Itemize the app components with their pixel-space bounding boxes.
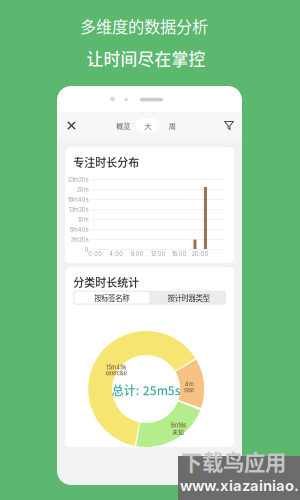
button[interactable]: 概览 <box>111 119 135 132</box>
staticText: 8:00 <box>131 251 144 257</box>
staticText: 5m16s <box>170 422 186 429</box>
staticText: 周 <box>169 120 176 131</box>
staticText: 12:00 <box>151 251 166 257</box>
staticText: 15m49s <box>106 364 126 371</box>
staticText: 3m20s <box>71 236 89 243</box>
staticText: www.xiazainiao.com <box>180 477 299 500</box>
staticText: 13m20s <box>69 206 89 213</box>
staticText: 4m <box>185 381 194 388</box>
staticText: 20:00 <box>192 251 209 257</box>
button[interactable]: 按计时器类型 <box>151 290 226 305</box>
staticText: 16m40s <box>68 196 89 203</box>
staticText: 6m40s <box>70 226 89 233</box>
staticText: 23m20s <box>68 176 89 183</box>
staticText: 下载鸟应用 <box>181 446 286 477</box>
staticText: 未知 <box>172 428 184 436</box>
staticText: 总计: 25m5s <box>112 381 181 399</box>
staticText: 0:00 <box>88 251 102 257</box>
button[interactable]: 按标签名称 <box>73 290 151 305</box>
button[interactable]: 天 <box>135 119 160 132</box>
staticText: 天 <box>144 120 151 131</box>
staticText: 16:00 <box>172 251 187 257</box>
staticText: 多维度的数据分析 <box>80 14 208 38</box>
staticText: 分类时长统计 <box>73 274 139 290</box>
staticText: 按计时器类型 <box>167 292 209 303</box>
staticText: rest <box>184 387 194 394</box>
button[interactable]: Filter <box>57 112 75 138</box>
staticText: 10m <box>78 216 89 223</box>
button[interactable]: 周 <box>160 119 184 132</box>
staticText: 0 <box>85 246 89 253</box>
staticText: 专注时长分布 <box>73 154 139 170</box>
staticText: 20m <box>77 186 89 193</box>
staticText: 按标签名称 <box>94 292 129 303</box>
staticText: exercise <box>106 370 127 377</box>
staticText: 4:00 <box>109 251 123 257</box>
staticText: 概览 <box>116 120 130 131</box>
button[interactable]: Close <box>57 112 75 138</box>
staticText: 让时间尽在掌控 <box>86 46 205 70</box>
